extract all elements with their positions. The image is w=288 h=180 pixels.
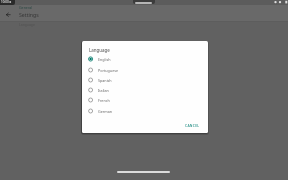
staticText: 10:00: [1, 0, 9, 4]
staticText: Language: [89, 47, 110, 53]
button[interactable]: German: [86, 106, 196, 116]
staticText: CANCEL: [185, 123, 200, 128]
button[interactable]: Portuguese: [86, 65, 196, 75]
button[interactable]: Spanish: [86, 75, 196, 85]
staticText: German: [98, 109, 113, 114]
button[interactable]: French: [86, 95, 196, 105]
staticText: English: [98, 57, 111, 62]
staticText: Settings: [19, 11, 39, 18]
staticText: Spanish: [98, 78, 112, 83]
button[interactable]: [4, 11, 13, 19]
button[interactable]: Language: [19, 22, 35, 27]
button[interactable]: CANCEL: [183, 121, 202, 130]
staticText: French: [98, 98, 110, 103]
button[interactable]: Italian: [86, 85, 196, 95]
staticText: Portuguese: [98, 68, 119, 73]
staticText: Italian: [98, 88, 109, 93]
staticText: General: [19, 5, 33, 10]
button[interactable]: English: [86, 54, 196, 64]
